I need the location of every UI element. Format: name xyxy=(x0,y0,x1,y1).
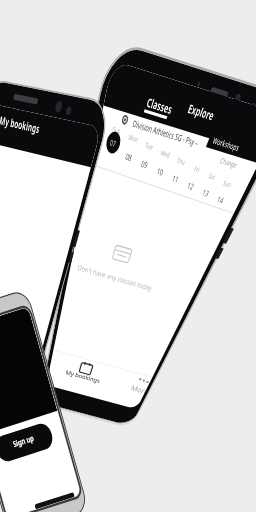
button[interactable] xyxy=(0,112,46,136)
button[interactable] xyxy=(0,428,60,460)
button[interactable] xyxy=(216,152,242,170)
button[interactable] xyxy=(128,372,160,398)
button[interactable] xyxy=(58,358,110,388)
button[interactable] xyxy=(183,102,217,122)
button[interactable] xyxy=(212,132,242,154)
button[interactable] xyxy=(140,95,180,117)
